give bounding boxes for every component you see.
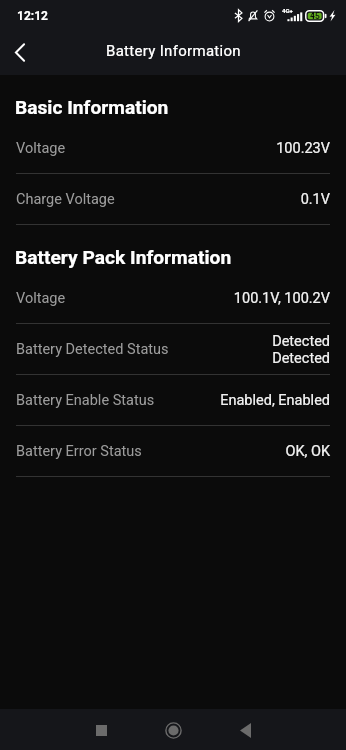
staticText: Voltage (16, 140, 66, 157)
staticText: Detected Detected (268, 333, 330, 366)
staticText: Voltage (16, 290, 66, 307)
button[interactable]: Back (0, 28, 40, 76)
staticText: Battery Detected Status (16, 341, 169, 358)
staticText: Battery Enable Status (16, 392, 155, 409)
button[interactable]: Home (153, 710, 193, 750)
staticText: Basic Information (15, 96, 169, 119)
button[interactable]: Voltage (0, 123, 346, 174)
button[interactable]: Battery Error Status (0, 426, 346, 477)
staticText: 100.1V, 100.2V (233, 290, 330, 307)
staticText: 12:12 (17, 9, 48, 23)
staticText: Battery Information (106, 42, 241, 60)
staticText: OK, OK (285, 443, 330, 460)
button[interactable]: Battery Detected Status (0, 324, 346, 375)
staticText: 4G+ (282, 7, 293, 14)
button[interactable]: Back (225, 710, 265, 750)
button[interactable]: Charge Voltage (0, 174, 346, 225)
button[interactable]: Battery Enable Status (0, 375, 346, 426)
staticText: Charge Voltage (16, 191, 115, 208)
staticText: Battery Error Status (16, 443, 142, 460)
button[interactable]: Recent apps (81, 710, 121, 750)
staticText: Battery Pack Information (15, 246, 232, 269)
staticText: 45 (310, 11, 320, 21)
staticText: 100.23V (276, 140, 330, 157)
button[interactable]: Voltage (0, 273, 346, 324)
staticText: Enabled, Enabled (220, 392, 330, 409)
staticText: 0.1V (300, 191, 330, 208)
